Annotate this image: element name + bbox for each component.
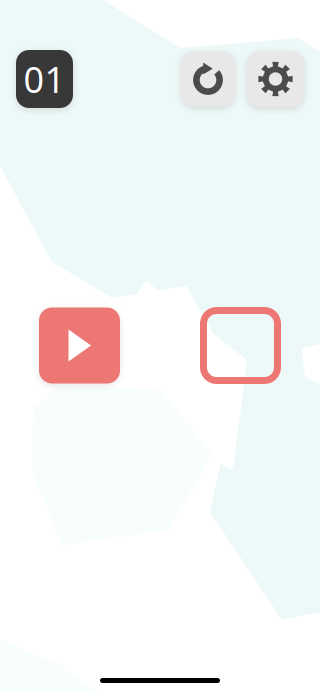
button[interactable]: Reset xyxy=(181,51,235,106)
button[interactable]: Settings xyxy=(247,51,304,107)
staticText: 01 xyxy=(23,55,65,103)
button[interactable]: Stop xyxy=(200,307,281,384)
button[interactable]: Round 01 xyxy=(16,50,73,108)
button[interactable]: Start xyxy=(39,307,120,383)
